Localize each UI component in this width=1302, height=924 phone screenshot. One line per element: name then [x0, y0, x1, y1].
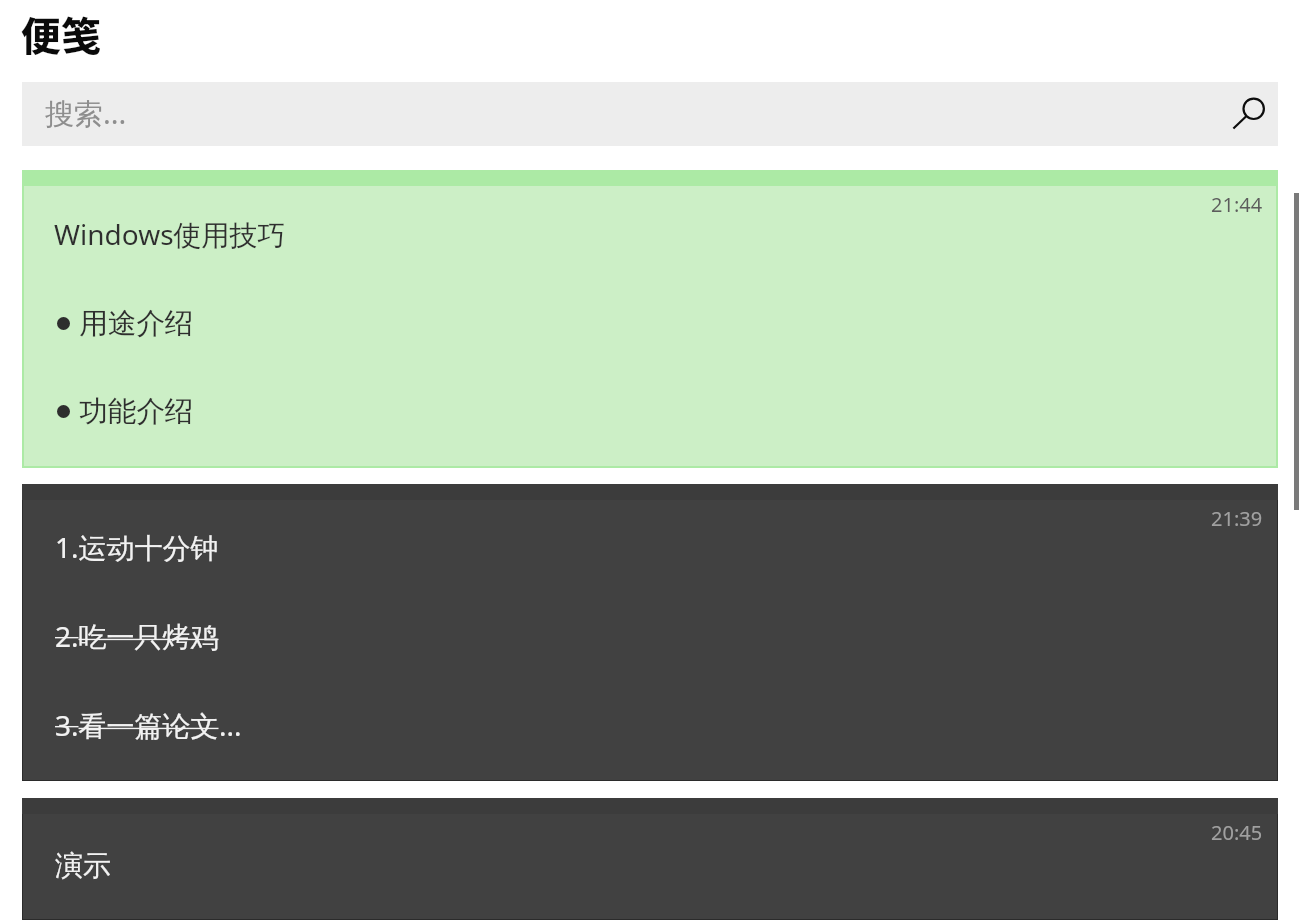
- staticText: 用途介绍: [79, 305, 194, 341]
- staticText: 功能介绍: [79, 393, 194, 429]
- staticText: 21:39: [1211, 505, 1263, 532]
- staticText: 演示: [55, 848, 111, 883]
- staticText: 搜索...: [45, 93, 127, 133]
- staticText: ...: [219, 706, 242, 744]
- staticText: 便笺: [21, 5, 101, 63]
- staticText: 1.运动十分钟: [55, 528, 219, 566]
- button[interactable]: 演示: [22, 798, 1278, 920]
- staticText: Windows使用技巧: [54, 215, 286, 253]
- button[interactable]: 搜索...: [22, 82, 1278, 146]
- button[interactable]: Windows使用技巧: [22, 170, 1278, 468]
- button[interactable]: 1.运动十分钟: [22, 484, 1278, 781]
- staticText: 2.吃一只烤鸡: [55, 617, 219, 655]
- button[interactable]: Search: [1226, 82, 1278, 146]
- staticText: 3.看一篇论文: [55, 706, 219, 744]
- staticText: 21:44: [1211, 191, 1263, 218]
- staticText: 20:45: [1211, 819, 1263, 846]
